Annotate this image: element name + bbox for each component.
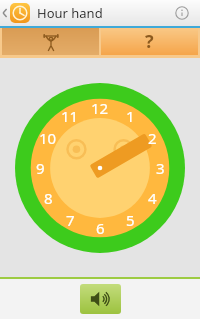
staticText: 6 bbox=[96, 218, 105, 238]
staticText: 5 bbox=[126, 210, 135, 230]
button[interactable]: Info bbox=[172, 3, 192, 23]
staticText: 12 bbox=[91, 98, 109, 118]
staticText: 1 bbox=[126, 106, 135, 126]
staticText: 11 bbox=[61, 106, 79, 126]
staticText: 7 bbox=[66, 210, 75, 230]
staticText: 10 bbox=[39, 128, 57, 148]
staticText: 4 bbox=[148, 188, 157, 208]
staticText: 8 bbox=[44, 188, 53, 208]
button[interactable]: App icon bbox=[10, 3, 30, 23]
button[interactable]: Back bbox=[1, 0, 10, 26]
button[interactable]: Play sound bbox=[80, 284, 121, 314]
staticText: Hour hand bbox=[37, 4, 103, 22]
staticText: 9 bbox=[36, 158, 45, 178]
staticText: 2 bbox=[148, 128, 157, 148]
staticText: ? bbox=[145, 29, 154, 54]
staticText: 3 bbox=[156, 158, 165, 178]
button[interactable]: Exercise bbox=[2, 28, 99, 55]
button[interactable]: Quiz bbox=[101, 28, 198, 55]
